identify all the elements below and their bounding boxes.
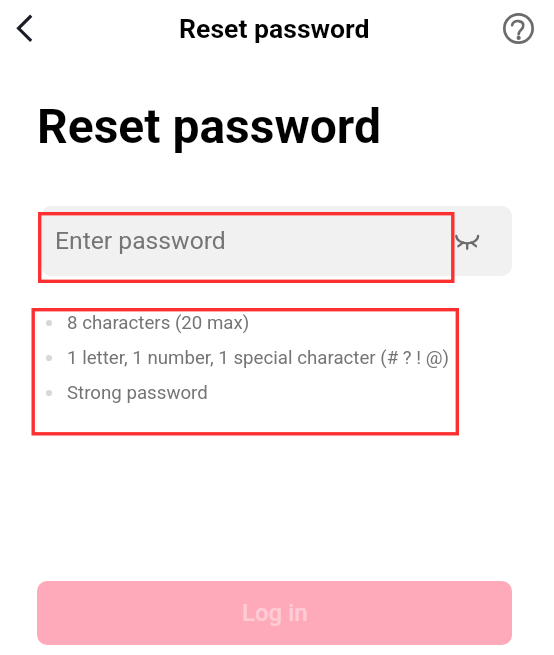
button[interactable]: Show password (445, 219, 490, 264)
staticText: Reset password (37, 98, 381, 154)
staticText: Strong password (67, 382, 208, 404)
button[interactable]: Enter password (41, 206, 512, 276)
staticText: Enter password (55, 226, 226, 255)
button[interactable]: Log in (37, 581, 512, 645)
staticText: Reset password (179, 13, 370, 44)
staticText: 8 characters (20 max) (67, 312, 250, 334)
staticText: 1 letter, 1 number, 1 special character … (67, 347, 450, 369)
staticText: Log in (242, 599, 308, 627)
button[interactable]: Back (2, 6, 46, 50)
button[interactable]: Help (498, 8, 539, 49)
